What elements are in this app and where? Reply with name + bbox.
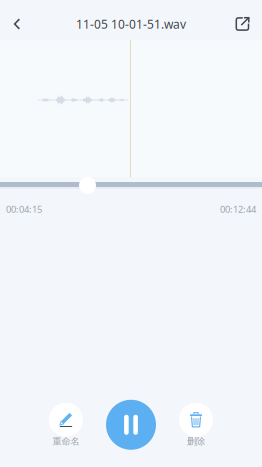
- button[interactable]: 删除: [178, 400, 214, 450]
- staticText: 00:04:15: [6, 203, 42, 215]
- staticText: 删除: [187, 436, 205, 447]
- button[interactable]: 重命名: [48, 400, 84, 450]
- button[interactable]: Back: [0, 8, 34, 40]
- staticText: 00:12:44: [220, 203, 256, 215]
- staticText: 重命名: [52, 436, 79, 447]
- button[interactable]: Pause: [106, 400, 156, 450]
- button[interactable]: Share: [223, 8, 262, 40]
- staticText: 11-05 10-01-51.wav: [76, 16, 186, 32]
